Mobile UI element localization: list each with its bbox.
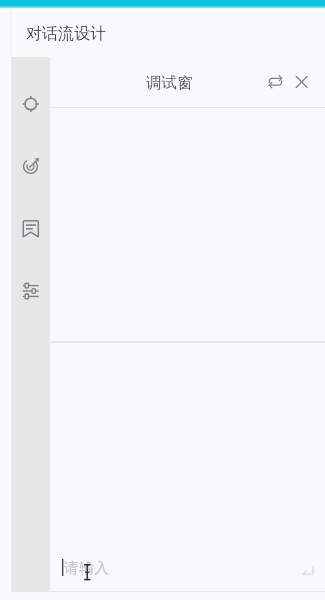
button[interactable]: Refresh: [264, 70, 288, 94]
button[interactable]: Settings: [19, 279, 43, 303]
button[interactable]: Close: [290, 70, 314, 94]
button[interactable]: Locate: [19, 92, 43, 116]
button[interactable]: Notes: [19, 217, 43, 241]
staticText: 请输入: [64, 559, 109, 578]
staticText: 调试窗: [146, 73, 193, 93]
staticText: 对话流设计: [26, 24, 106, 44]
button[interactable]: Target: [19, 155, 43, 179]
